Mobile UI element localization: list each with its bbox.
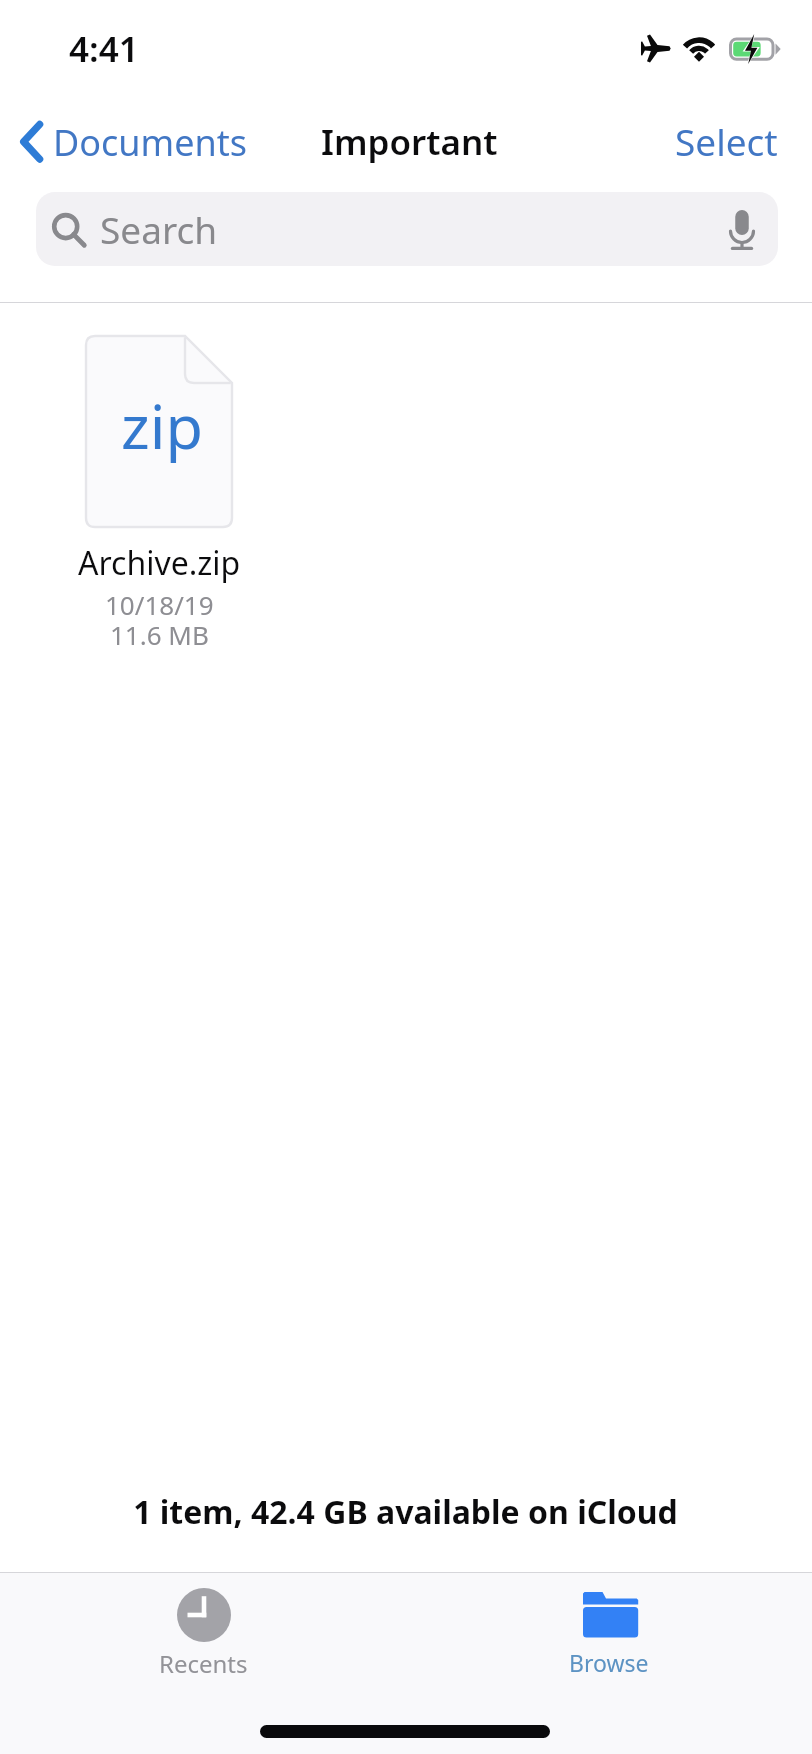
staticText: 10/18/19 [105,587,214,622]
staticText: 1 item, 42.4 GB available on iCloud [133,1490,678,1534]
button[interactable]: Browse [543,1584,675,1686]
button[interactable]: Back to Documents [4,106,264,171]
staticText: Important [321,118,498,166]
staticText: Documents [53,118,248,167]
staticText: Archive.zip [78,541,241,585]
button[interactable]: Voice search [728,210,756,250]
staticText: zip [121,384,203,467]
button[interactable]: Recents [133,1580,274,1688]
staticText: 4:41 [69,25,139,73]
staticText: Search [100,204,218,254]
button[interactable]: Search [36,192,778,266]
staticText: 11.6 MB [110,617,209,652]
staticText: Recents [159,1647,248,1680]
button[interactable]: Archive.zip [86,336,232,527]
button[interactable]: Select [639,98,812,184]
staticText: Browse [569,1647,649,1678]
